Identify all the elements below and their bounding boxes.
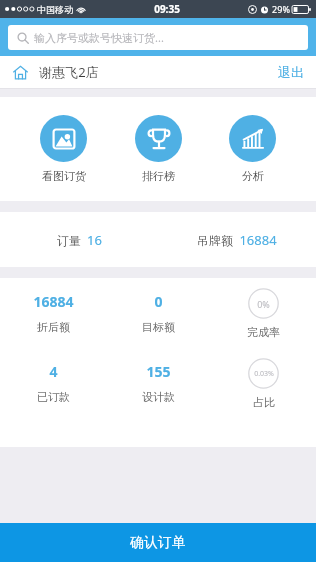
button[interactable]: 排行榜 [127,111,190,187]
button[interactable]: 确认订单 [0,523,316,562]
staticText: 16884 [33,292,74,311]
staticText: 谢惠飞2店 [39,63,99,81]
staticText: 已订款 [37,390,70,404]
button[interactable]: 分析 [221,111,284,187]
staticText: 16884 [239,231,277,249]
staticText: 中国移动 [37,4,73,15]
staticText: 确认订单 [130,534,186,552]
button[interactable]: 4 [0,362,106,404]
button[interactable]: 16884 [0,292,106,334]
staticText: 吊牌额 [197,233,233,248]
button[interactable]: 输入序号或款号快速订货... [8,25,308,50]
staticText: 0 [154,292,163,311]
staticText: 0% [257,298,270,310]
staticText: 看图订货 [42,169,86,183]
staticText: 目标额 [142,320,175,334]
button[interactable]: 退出 [276,60,306,84]
staticText: 09:35 [154,2,180,16]
button[interactable]: 看图订货 [32,111,95,187]
button[interactable]: 0% [211,288,316,339]
staticText: 排行榜 [142,169,175,183]
staticText: 输入序号或款号快速订货... [34,30,164,45]
staticText: 完成率 [247,325,280,339]
staticText: 分析 [242,169,264,183]
button[interactable]: 0.03% [211,358,316,409]
staticText: 设计款 [142,390,175,404]
button[interactable]: 155 [106,362,211,404]
staticText: 占比 [253,395,275,409]
staticText: 订量 [57,233,81,248]
button[interactable]: Home [10,62,30,82]
staticText: 155 [146,362,171,381]
staticText: 29% [272,3,290,15]
staticText: 0.03% [254,369,274,379]
staticText: 4 [49,362,58,381]
staticText: 退出 [278,64,304,80]
staticText: 16 [87,231,102,249]
staticText: 折后额 [37,320,70,334]
button[interactable]: 0 [106,292,211,334]
